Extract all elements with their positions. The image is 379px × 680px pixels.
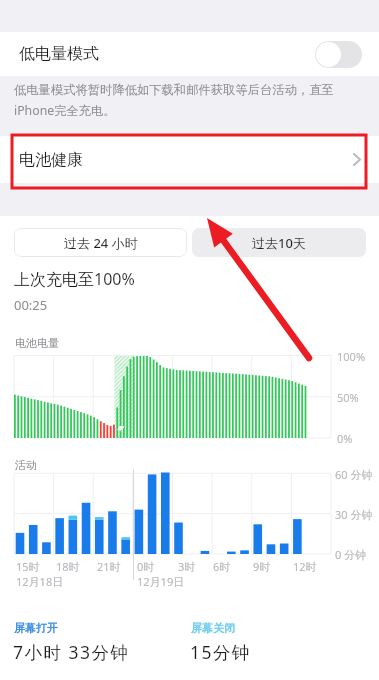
- staticText: 7小时 33分钟: [13, 640, 130, 664]
- staticText: 15时: [16, 559, 40, 574]
- staticText: 过去10天: [252, 234, 306, 252]
- staticText: 12月18日: [16, 574, 64, 589]
- staticText: 15分钟: [190, 640, 252, 664]
- staticText: 电池健康: [19, 150, 83, 170]
- staticText: 3时: [178, 559, 196, 574]
- staticText: 12月19日: [137, 574, 185, 589]
- staticText: 过去 24 小时: [64, 234, 138, 252]
- staticText: 6时: [213, 559, 231, 574]
- staticText: 屏幕打开: [14, 621, 58, 635]
- staticText: 0时: [137, 559, 155, 574]
- staticText: 0 分钟: [335, 547, 367, 562]
- staticText: 18时: [56, 559, 80, 574]
- staticText: 50%: [337, 390, 359, 405]
- staticText: 100%: [337, 349, 366, 364]
- staticText: 屏幕关闭: [191, 621, 235, 635]
- staticText: 0%: [337, 431, 353, 446]
- staticText: 60 分钟: [335, 467, 373, 482]
- staticText: 12时: [293, 559, 317, 574]
- button[interactable]: Low Power Mode toggle: [315, 41, 362, 68]
- button[interactable]: 过去10天: [192, 228, 366, 257]
- staticText: 30 分钟: [335, 507, 373, 522]
- button[interactable]: 电池健康: [0, 136, 379, 183]
- staticText: 低电量模式将暂时降低如下载和邮件获取等后台活动，直至 iPhone完全充电。: [14, 82, 334, 118]
- staticText: 21时: [97, 559, 121, 574]
- staticText: 上次充电至100%: [14, 268, 135, 290]
- button[interactable]: 低电量模式: [0, 32, 379, 76]
- staticText: 低电量模式: [19, 44, 99, 64]
- staticText: 活动: [15, 458, 37, 472]
- button[interactable]: 过去 24 小时: [14, 228, 187, 257]
- staticText: 9时: [253, 559, 271, 574]
- staticText: 电池电量: [15, 336, 59, 350]
- staticText: 00:25: [14, 296, 48, 314]
